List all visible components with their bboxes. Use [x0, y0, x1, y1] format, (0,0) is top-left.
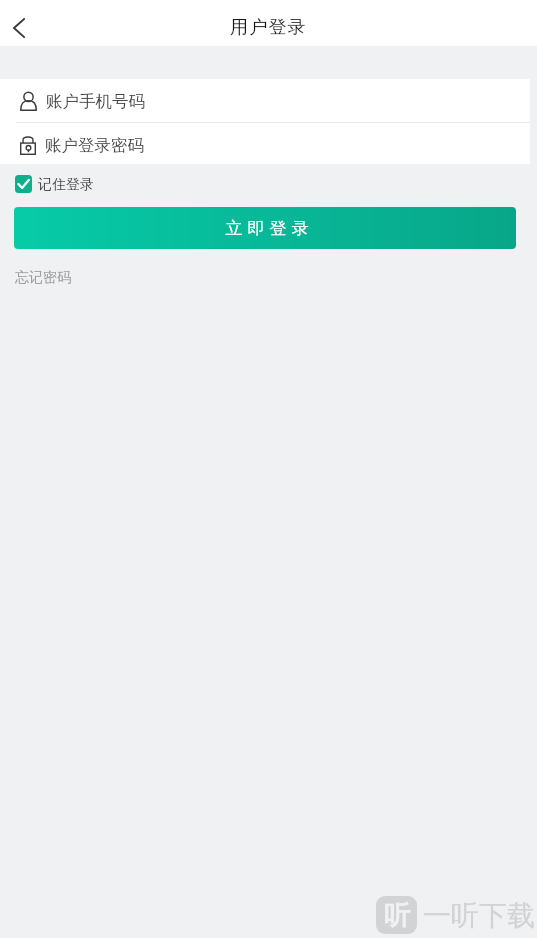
button[interactable]: 账户手机号码 [0, 79, 530, 122]
button[interactable]: Back [0, 0, 38, 46]
button[interactable]: 记住登录 [15, 175, 94, 193]
staticText: 记住登录 [38, 176, 94, 194]
staticText: 一听下载 [423, 898, 535, 933]
staticText: 忘记密码 [15, 269, 71, 287]
staticText: 立即登录 [223, 218, 311, 239]
button[interactable]: 立即登录 [14, 207, 516, 249]
button[interactable]: 忘记密码 [15, 269, 71, 287]
staticText: 账户登录密码 [45, 135, 144, 156]
staticText: 账户手机号码 [46, 91, 145, 112]
button[interactable]: 账户登录密码 [0, 123, 530, 164]
staticText: 用户登录 [230, 16, 307, 39]
staticText: 听 [384, 899, 410, 932]
